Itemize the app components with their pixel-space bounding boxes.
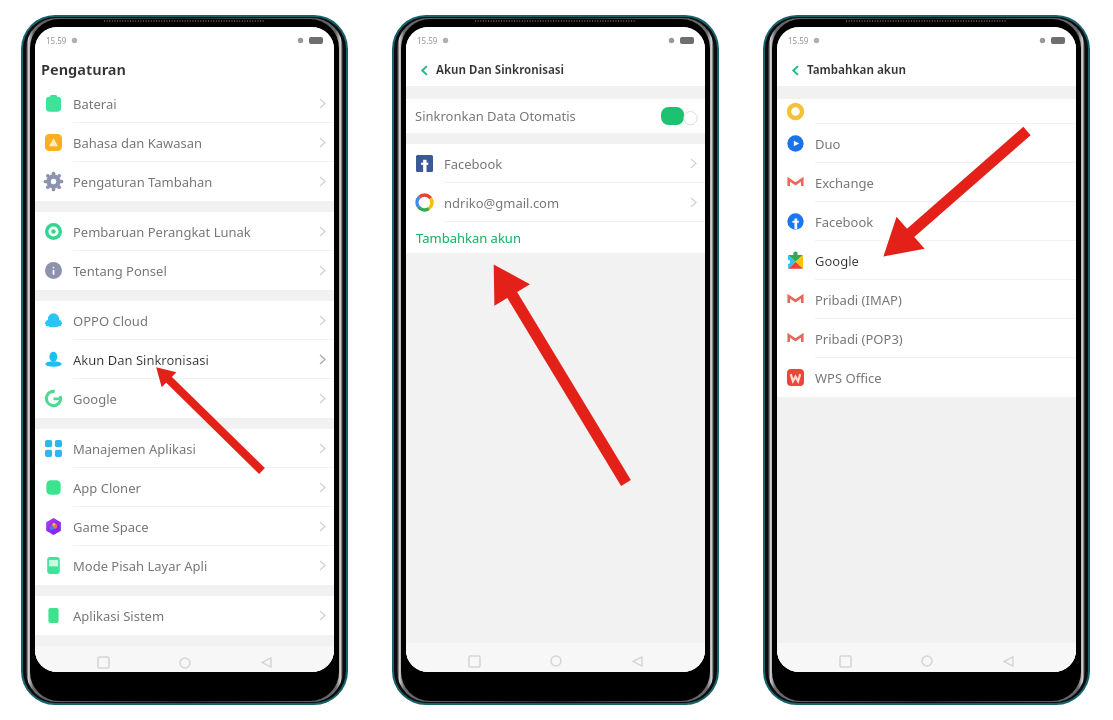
button[interactable]: Facebook <box>406 144 705 183</box>
button[interactable]: Exchange <box>777 163 1076 202</box>
button[interactable]: Back <box>624 653 650 669</box>
staticText: WPS Office <box>815 369 882 387</box>
button[interactable]: Duo <box>777 124 1076 163</box>
staticText: Sinkronkan Data Otomatis <box>415 107 576 125</box>
button[interactable]: ndriko@gmail.com <box>406 183 705 222</box>
staticText: Bahasa dan Kawasan <box>73 134 203 152</box>
staticText: Pembaruan Perangkat Lunak <box>73 223 251 241</box>
button[interactable]: Home <box>543 653 569 669</box>
button[interactable]: Home <box>914 653 940 669</box>
button[interactable]: Tambahkan akun <box>406 222 705 253</box>
button[interactable]: Back <box>253 656 279 669</box>
button[interactable]: Back <box>415 61 433 79</box>
staticText: Akun Dan Sinkronisasi <box>73 351 209 369</box>
button[interactable]: Akun Dan Sinkronisasi <box>35 340 334 379</box>
button[interactable]: Auto sync toggle <box>661 107 696 125</box>
staticText: Manajemen Aplikasi <box>73 440 196 458</box>
staticText: App Cloner <box>73 479 141 497</box>
staticText: OPPO Cloud <box>73 312 148 330</box>
staticText: Aplikasi Sistem <box>73 607 165 625</box>
button[interactable]: Sinkronkan Data Otomatis <box>406 99 705 133</box>
button[interactable]: Aplikasi Sistem <box>35 596 334 635</box>
staticText: ndriko@gmail.com <box>444 194 560 212</box>
button[interactable]: Tentang Ponsel <box>35 251 334 290</box>
staticText: Tambahkan akun <box>807 62 906 78</box>
staticText: 15.59 <box>788 35 809 46</box>
button[interactable]: Mode Pisah Layar Apli <box>35 546 334 585</box>
button[interactable]: OPPO Cloud <box>35 301 334 340</box>
staticText: 15.59 <box>46 35 67 46</box>
staticText: Google <box>73 390 117 408</box>
staticText: 15.59 <box>417 35 438 46</box>
button[interactable]: Bahasa dan Kawasan <box>35 123 334 162</box>
button[interactable]: Back <box>995 653 1021 669</box>
staticText: Game Space <box>73 518 149 536</box>
button[interactable]: Pribadi (IMAP) <box>777 280 1076 319</box>
staticText: Tentang Ponsel <box>73 262 167 280</box>
staticText: Facebook <box>815 213 874 231</box>
button[interactable]: App Cloner <box>35 468 334 507</box>
staticText: Exchange <box>815 174 874 192</box>
button[interactable]: Pengaturan Tambahan <box>35 162 334 201</box>
button[interactable]: Google <box>777 241 1076 280</box>
button[interactable]: Back <box>786 61 804 79</box>
staticText: Pengaturan <box>41 59 126 79</box>
button[interactable]: Facebook <box>777 202 1076 241</box>
button[interactable]: Game Space <box>35 507 334 546</box>
button[interactable]: Home <box>172 656 198 669</box>
button[interactable] <box>777 99 1076 124</box>
button[interactable]: Pembaruan Perangkat Lunak <box>35 212 334 251</box>
staticText: Google <box>815 252 859 270</box>
staticText: Facebook <box>444 155 503 173</box>
button[interactable]: WPS Office <box>777 358 1076 397</box>
button[interactable]: Pribadi (POP3) <box>777 319 1076 358</box>
staticText: Pribadi (IMAP) <box>815 291 902 309</box>
button[interactable]: Manajemen Aplikasi <box>35 429 334 468</box>
button[interactable]: Baterai <box>35 84 334 123</box>
staticText: Pribadi (POP3) <box>815 330 903 348</box>
staticText: Pengaturan Tambahan <box>73 173 213 191</box>
button[interactable]: Recents <box>832 653 858 669</box>
staticText: Duo <box>815 135 841 153</box>
button[interactable]: Recents <box>461 653 487 669</box>
staticText: Akun Dan Sinkronisasi <box>436 62 565 78</box>
staticText: Mode Pisah Layar Apli <box>73 557 208 575</box>
staticText: Baterai <box>73 95 117 113</box>
button[interactable]: Google <box>35 379 334 418</box>
button[interactable]: Recents <box>90 656 116 669</box>
staticText: Tambahkan akun <box>416 229 521 247</box>
